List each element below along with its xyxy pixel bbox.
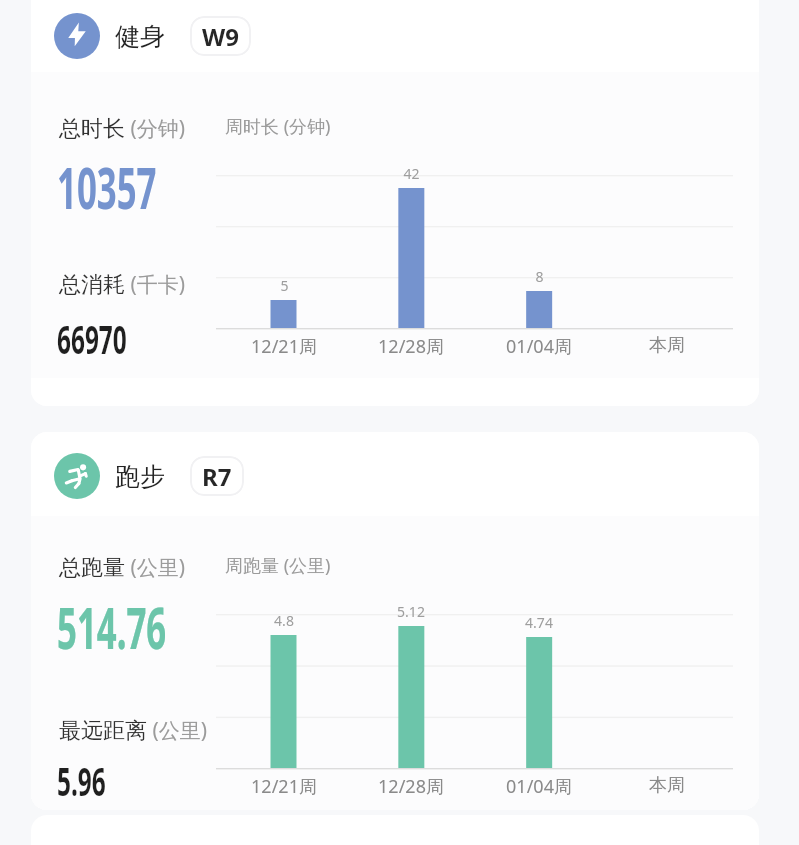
button[interactable]: Workout bbox=[31, 0, 759, 406]
staticText: 周时长 (分钟) bbox=[225, 114, 331, 139]
staticText: 8 bbox=[535, 267, 544, 286]
staticText: 42 bbox=[403, 164, 420, 183]
staticText: 4.8 bbox=[274, 611, 294, 630]
staticText: 总消耗 bbox=[59, 271, 125, 299]
staticText: 5.12 bbox=[397, 602, 425, 621]
staticText: 12/21周 bbox=[251, 334, 317, 359]
staticText: 01/04周 bbox=[506, 334, 572, 359]
staticText: 跑步 bbox=[115, 461, 165, 492]
staticText: 4.74 bbox=[525, 613, 553, 632]
staticText: 5 bbox=[280, 276, 289, 295]
button[interactable]: Running bbox=[31, 432, 759, 810]
staticText: W9 bbox=[202, 20, 239, 53]
staticText: 5.96 bbox=[57, 753, 106, 807]
staticText: 66970 bbox=[57, 311, 127, 365]
staticText: 10357 bbox=[57, 148, 157, 226]
other: Workout bbox=[54, 13, 100, 59]
staticText: 周跑量 (公里) bbox=[225, 553, 331, 578]
staticText: 01/04周 bbox=[506, 774, 572, 799]
staticText: 最远距离 bbox=[59, 717, 147, 745]
staticText: 本周 bbox=[649, 774, 685, 797]
staticText: (千卡) bbox=[125, 270, 186, 299]
button[interactable]: Workout bbox=[31, 0, 759, 72]
staticText: 总时长 bbox=[59, 115, 125, 143]
staticText: 12/28周 bbox=[378, 334, 444, 359]
staticText: R7 bbox=[202, 460, 232, 493]
staticText: (分钟) bbox=[125, 114, 186, 143]
staticText: 12/28周 bbox=[378, 774, 444, 799]
staticText: 健身 bbox=[115, 21, 165, 52]
staticText: (公里) bbox=[125, 553, 186, 582]
button[interactable]: Running bbox=[31, 432, 759, 512]
staticText: 12/21周 bbox=[251, 774, 317, 799]
other: Running bbox=[54, 453, 100, 499]
staticText: (公里) bbox=[147, 716, 208, 745]
staticText: 总跑量 bbox=[59, 554, 125, 582]
staticText: 本周 bbox=[649, 334, 685, 357]
staticText: 514.76 bbox=[57, 588, 167, 666]
